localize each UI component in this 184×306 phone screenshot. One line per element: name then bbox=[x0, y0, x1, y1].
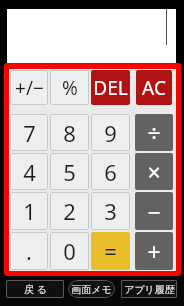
button[interactable]: − bbox=[135, 192, 173, 230]
button[interactable]: % bbox=[50, 70, 89, 105]
button[interactable]: 9 bbox=[91, 114, 130, 151]
staticText: 6 bbox=[104, 157, 117, 187]
button[interactable]: アプリ履歴 bbox=[121, 280, 177, 298]
staticText: 4 bbox=[23, 157, 36, 187]
button[interactable]: 4 bbox=[10, 153, 48, 190]
button[interactable]: 7 bbox=[10, 114, 48, 151]
button[interactable]: 3 bbox=[91, 192, 130, 230]
staticText: . bbox=[26, 236, 32, 266]
staticText: AC bbox=[142, 75, 166, 101]
staticText: 戻 る bbox=[24, 282, 47, 296]
button[interactable]: ÷ bbox=[135, 114, 173, 151]
staticText: 3 bbox=[104, 196, 117, 226]
staticText: 0 bbox=[63, 236, 76, 266]
staticText: 画面メモ bbox=[71, 283, 112, 296]
staticText: ÷ bbox=[147, 117, 161, 148]
staticText: 2 bbox=[63, 196, 76, 226]
button[interactable]: 画面メモ bbox=[68, 280, 115, 298]
staticText: 8 bbox=[63, 118, 76, 148]
button[interactable]: +/− bbox=[10, 70, 48, 105]
staticText: % bbox=[62, 75, 78, 101]
staticText: +/− bbox=[15, 75, 44, 101]
button[interactable]: 2 bbox=[50, 192, 89, 230]
button[interactable]: AC bbox=[136, 70, 172, 105]
staticText: = bbox=[104, 236, 117, 266]
staticText: アプリ履歴 bbox=[124, 283, 175, 296]
button[interactable]: + bbox=[135, 232, 173, 270]
button[interactable]: . bbox=[10, 232, 48, 270]
button[interactable]: 6 bbox=[91, 153, 130, 190]
button[interactable]: × bbox=[135, 153, 173, 190]
button[interactable]: 0 bbox=[50, 232, 89, 270]
staticText: DEL bbox=[93, 75, 128, 101]
staticText: × bbox=[147, 156, 161, 187]
button[interactable]: 8 bbox=[50, 114, 89, 151]
staticText: 7 bbox=[23, 118, 36, 148]
staticText: − bbox=[147, 196, 161, 227]
staticText: 5 bbox=[63, 157, 76, 187]
staticText: + bbox=[147, 236, 161, 267]
button[interactable]: = bbox=[91, 232, 130, 270]
staticText: 9 bbox=[104, 118, 117, 148]
button[interactable]: DEL bbox=[91, 70, 130, 105]
button[interactable]: 戻 る bbox=[6, 280, 64, 298]
button[interactable]: 1 bbox=[10, 192, 48, 230]
staticText: 1 bbox=[23, 196, 36, 226]
button[interactable]: 5 bbox=[50, 153, 89, 190]
